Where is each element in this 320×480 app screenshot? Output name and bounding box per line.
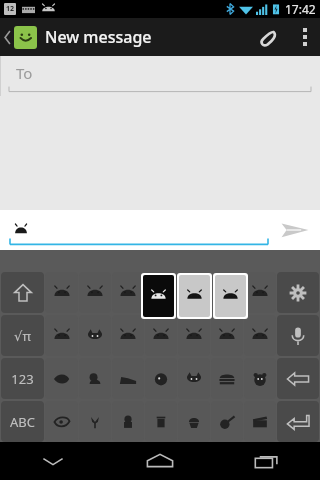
button[interactable]: Emoji <box>178 401 210 442</box>
button[interactable]: Emoji <box>211 315 243 356</box>
staticText: To <box>16 63 33 83</box>
button[interactable]: Emoji <box>215 275 246 317</box>
button[interactable]: Emoji <box>178 315 210 356</box>
button[interactable]: Attach <box>246 18 290 56</box>
button[interactable]: Letters <box>1 401 44 442</box>
staticText: New message <box>45 26 152 48</box>
button[interactable]: Enter <box>277 401 319 442</box>
button[interactable]: Emoji <box>244 315 276 356</box>
button[interactable]: Emoji <box>145 272 177 313</box>
button[interactable]: Emoji <box>45 358 78 399</box>
button[interactable]: Emoji <box>79 272 111 313</box>
button[interactable]: Emoji <box>112 401 144 442</box>
staticText: √π <box>14 327 31 345</box>
staticText: ABC <box>10 413 35 431</box>
button[interactable]: Delete <box>277 358 319 399</box>
button[interactable]: Emoji <box>45 272 78 313</box>
button[interactable]: Emoji <box>112 315 144 356</box>
button[interactable]: Recent apps <box>213 442 320 480</box>
button[interactable]: Emoji <box>45 315 78 356</box>
button[interactable]: Voice input <box>277 315 319 356</box>
staticText: 123 <box>11 370 34 388</box>
button[interactable]: Emoji <box>244 401 276 442</box>
button[interactable]: Shift <box>1 272 44 313</box>
button[interactable]: Emoji <box>211 358 243 399</box>
button[interactable]: Emoji <box>145 358 177 399</box>
button[interactable]: Numbers <box>1 358 44 399</box>
button[interactable]: Send <box>270 210 320 250</box>
staticText: 12 <box>6 4 15 14</box>
button[interactable]: More options <box>290 18 320 56</box>
button[interactable]: Emoji <box>179 275 210 317</box>
staticText: 17:42 <box>285 1 316 17</box>
button[interactable]: Emoji <box>211 272 243 313</box>
button[interactable]: Navigate up <box>0 18 158 56</box>
button[interactable]: Emoji <box>145 401 177 442</box>
button[interactable]: Settings <box>277 272 319 313</box>
button[interactable]: Emoji <box>112 358 144 399</box>
button[interactable]: Emoji <box>244 358 276 399</box>
button[interactable]: Emoji <box>211 401 243 442</box>
button[interactable] <box>10 210 268 250</box>
button[interactable]: Emoji <box>79 315 111 356</box>
button[interactable]: Symbols <box>1 315 44 356</box>
button[interactable]: Emoji <box>79 358 111 399</box>
button[interactable]: Emoji <box>145 315 177 356</box>
button[interactable]: To <box>0 56 320 96</box>
button[interactable]: Emoji <box>178 358 210 399</box>
button[interactable]: Emoji <box>178 272 210 313</box>
button[interactable]: Emoji <box>79 401 111 442</box>
button[interactable]: Hide keyboard <box>0 442 106 480</box>
button[interactable]: Emoji <box>45 401 78 442</box>
button[interactable]: Emoji <box>112 272 144 313</box>
button[interactable]: Emoji <box>244 272 276 313</box>
button[interactable]: Emoji <box>143 275 174 317</box>
button[interactable]: Home <box>106 442 213 480</box>
